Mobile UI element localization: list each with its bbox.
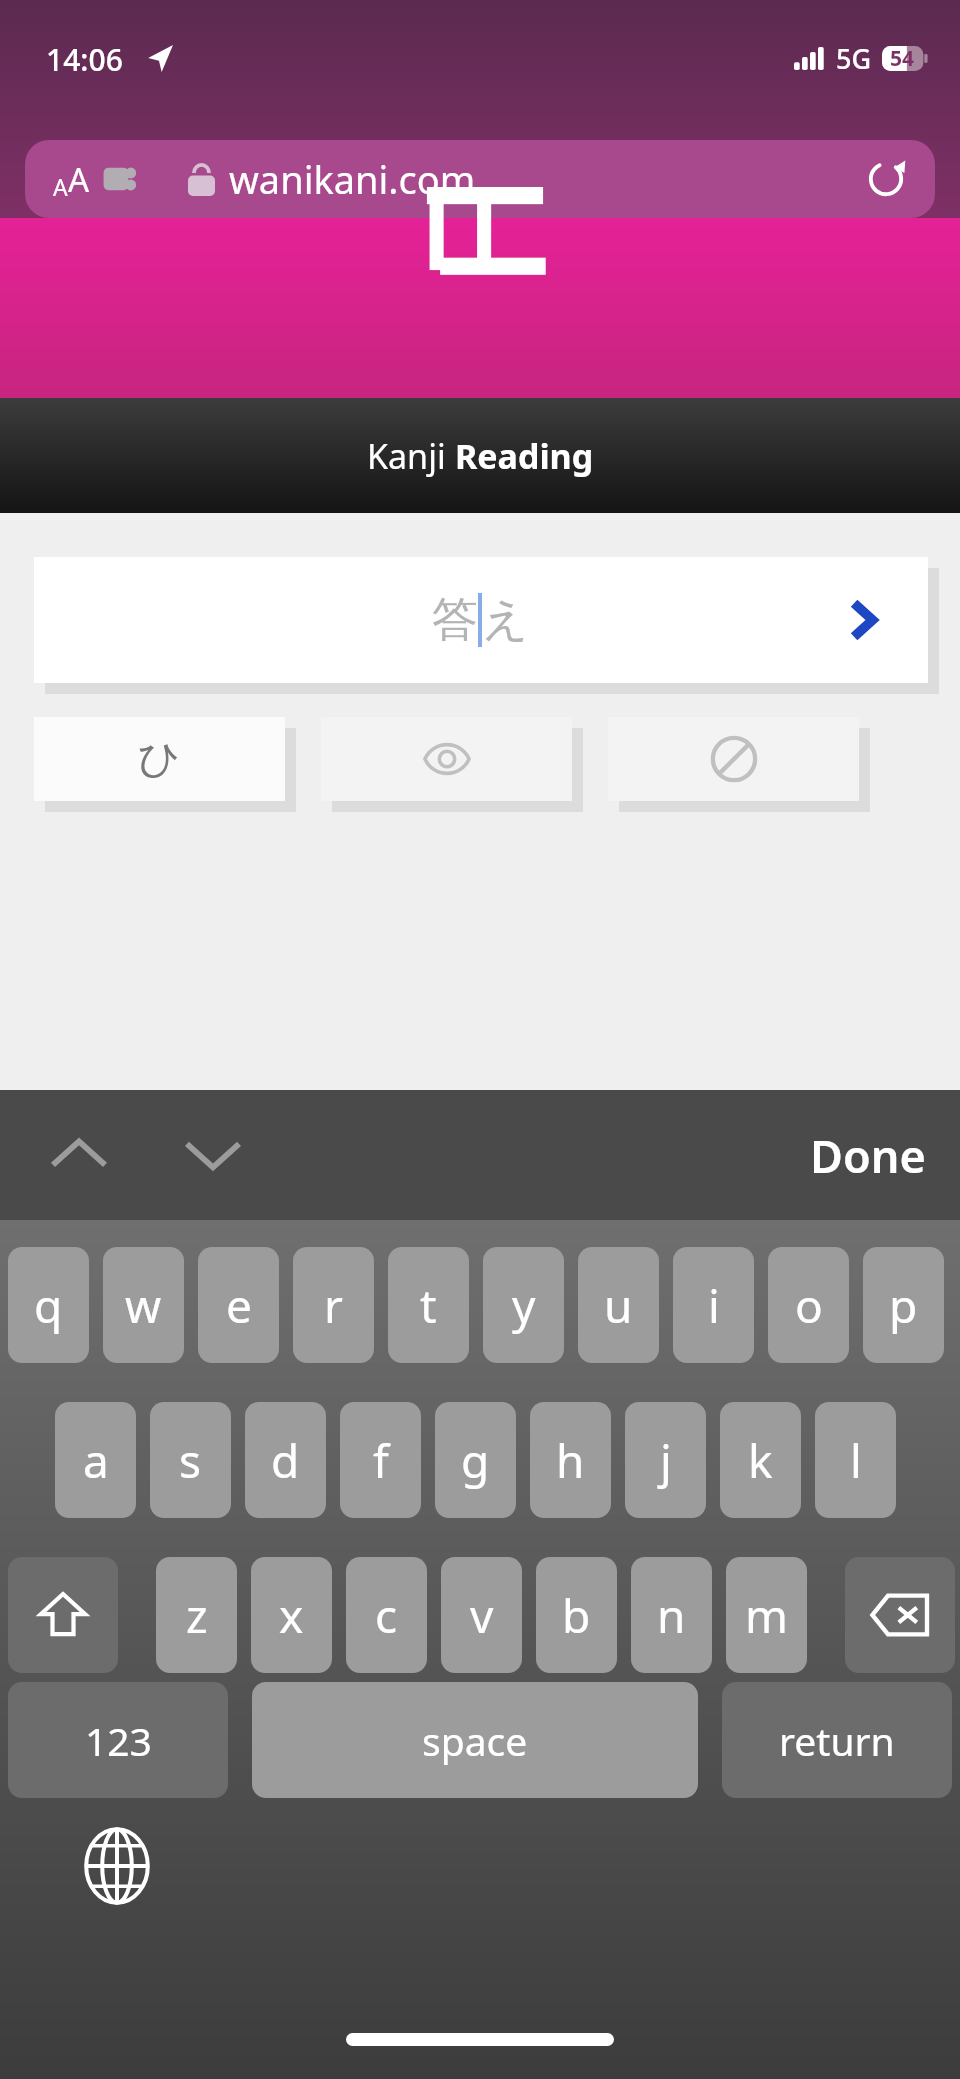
- button[interactable]: r: [293, 1247, 374, 1363]
- staticText: A: [68, 157, 90, 202]
- button[interactable]: x: [251, 1557, 332, 1673]
- staticText: ひ: [138, 733, 181, 786]
- staticText: f: [373, 1429, 389, 1492]
- staticText: e: [226, 1274, 252, 1337]
- staticText: a: [83, 1429, 109, 1492]
- button[interactable]: c: [346, 1557, 427, 1673]
- button[interactable]: space: [252, 1682, 698, 1798]
- staticText: q: [34, 1274, 63, 1337]
- staticText: え: [482, 591, 530, 649]
- other: Backspace: [870, 1592, 930, 1638]
- staticText: 5G: [836, 40, 872, 77]
- staticText: s: [179, 1429, 202, 1492]
- button[interactable]: z: [156, 1557, 237, 1673]
- button[interactable]: v: [441, 1557, 522, 1673]
- button[interactable]: A: [25, 140, 935, 218]
- staticText: Done: [810, 1125, 926, 1186]
- staticText: u: [604, 1274, 633, 1337]
- button[interactable]: i: [673, 1247, 754, 1363]
- button[interactable]: k: [720, 1402, 801, 1518]
- staticText: 答: [432, 591, 478, 649]
- button[interactable]: q: [8, 1247, 89, 1363]
- staticText: l: [850, 1429, 862, 1492]
- other: Page extensions: [102, 159, 142, 199]
- staticText: x: [279, 1584, 304, 1647]
- button[interactable]: Switch keyboard: [82, 1826, 152, 1906]
- button[interactable]: Previous field: [48, 1124, 110, 1186]
- button[interactable]: Next field: [182, 1124, 244, 1186]
- button[interactable]: Shift: [8, 1557, 118, 1673]
- button[interactable]: Reveal answer: [321, 717, 572, 801]
- staticText: Kanji: [367, 433, 455, 479]
- button[interactable]: t: [388, 1247, 469, 1363]
- staticText: b: [562, 1584, 591, 1647]
- staticText: A: [53, 171, 68, 202]
- staticText: v: [470, 1584, 494, 1647]
- staticText: g: [461, 1429, 490, 1492]
- button[interactable]: b: [536, 1557, 617, 1673]
- staticText: r: [324, 1274, 343, 1337]
- staticText: h: [556, 1429, 585, 1492]
- staticText: space: [422, 1714, 528, 1767]
- button[interactable]: w: [103, 1247, 184, 1363]
- button[interactable]: f: [340, 1402, 421, 1518]
- button[interactable]: a: [55, 1402, 136, 1518]
- staticText: 123: [85, 1714, 152, 1767]
- staticText: m: [745, 1584, 789, 1647]
- button[interactable]: n: [631, 1557, 712, 1673]
- staticText: Reading: [455, 433, 594, 479]
- button[interactable]: Skip item: [608, 717, 859, 801]
- button[interactable]: p: [863, 1247, 944, 1363]
- staticText: wanikani.com: [229, 153, 476, 205]
- staticText: w: [125, 1274, 162, 1337]
- button[interactable]: s: [150, 1402, 231, 1518]
- button[interactable]: j: [625, 1402, 706, 1518]
- button[interactable]: m: [726, 1557, 807, 1673]
- staticText: c: [375, 1584, 398, 1647]
- button[interactable]: u: [578, 1247, 659, 1363]
- button[interactable]: g: [435, 1402, 516, 1518]
- staticText: d: [271, 1429, 300, 1492]
- staticText: n: [657, 1584, 686, 1647]
- button[interactable]: y: [483, 1247, 564, 1363]
- button[interactable]: 答: [34, 557, 928, 683]
- staticText: t: [420, 1274, 437, 1337]
- staticText: k: [748, 1429, 773, 1492]
- staticText: j: [660, 1429, 672, 1492]
- button[interactable]: d: [245, 1402, 326, 1518]
- button[interactable]: h: [530, 1402, 611, 1518]
- staticText: 14:06: [46, 39, 123, 80]
- button[interactable]: 123: [8, 1682, 228, 1798]
- button[interactable]: Show hiragana: [34, 717, 285, 801]
- staticText: y: [512, 1274, 536, 1337]
- staticText: 54: [890, 44, 915, 73]
- staticText: return: [779, 1714, 895, 1767]
- button[interactable]: Done: [810, 1125, 926, 1186]
- button[interactable]: e: [198, 1247, 279, 1363]
- staticText: z: [186, 1584, 208, 1647]
- other: Submit answer: [840, 598, 884, 642]
- staticText: o: [795, 1274, 823, 1337]
- button[interactable]: Backspace: [845, 1557, 955, 1673]
- button[interactable]: l: [815, 1402, 896, 1518]
- button[interactable]: o: [768, 1247, 849, 1363]
- other: Shift: [38, 1590, 88, 1640]
- staticText: p: [889, 1274, 918, 1337]
- staticText: i: [708, 1274, 720, 1337]
- button[interactable]: return: [722, 1682, 952, 1798]
- other: Reload page: [863, 156, 909, 202]
